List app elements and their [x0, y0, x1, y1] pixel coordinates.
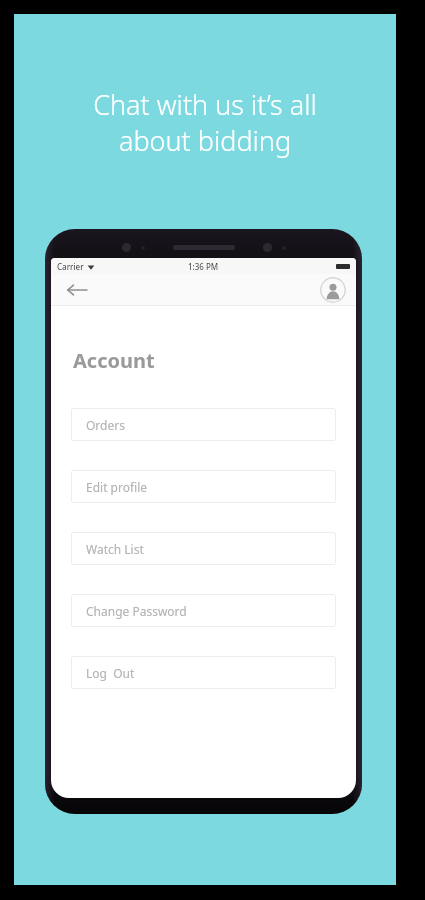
staticText: 1:36 PM [188, 261, 219, 272]
button[interactable]: Log Out [71, 656, 336, 689]
button[interactable]: Change Password [71, 594, 336, 627]
button[interactable]: Orders [71, 408, 336, 441]
button[interactable]: Back [63, 276, 91, 304]
staticText: Carrier [57, 261, 84, 272]
button[interactable]: Edit profile [71, 470, 336, 503]
staticText: Orders [86, 417, 125, 433]
staticText: Watch List [86, 541, 144, 557]
button[interactable]: Watch List [71, 532, 336, 565]
staticText: Chat with us it’s all about bidding [93, 86, 317, 159]
staticText: Account [73, 347, 155, 374]
staticText: Edit profile [86, 479, 148, 495]
staticText: Log Out [86, 665, 135, 681]
staticText: Change Password [86, 603, 187, 619]
button[interactable]: Profile [320, 277, 346, 303]
